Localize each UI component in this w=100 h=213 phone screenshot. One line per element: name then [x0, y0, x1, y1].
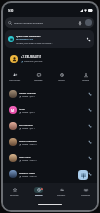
other: Voice search	[78, 21, 82, 25]
staticText: California • Just now	[24, 60, 43, 63]
button[interactable]: Sam Clark	[3, 150, 97, 166]
other: Call Hellen Franklin	[88, 92, 92, 96]
staticText: Add contact	[9, 79, 21, 82]
staticText: Hellen Franklin	[19, 91, 37, 94]
staticText: Mobile • Jun 2	[22, 95, 35, 98]
staticText: San Francisco • 2m	[16, 38, 34, 41]
other: Call Elsa Beckett	[88, 124, 92, 128]
staticText: Mobile • Jun 2	[22, 111, 35, 114]
button[interactable]: Grace Hoffman	[3, 134, 97, 150]
staticText: Favorites	[10, 194, 19, 197]
button[interactable]: Hellen Franklin	[3, 86, 97, 102]
staticText: Quick Ship Deliveries	[16, 34, 41, 37]
staticText: Voicemail	[81, 194, 90, 197]
button[interactable]: History	[50, 69, 73, 85]
staticText: History	[58, 79, 65, 82]
button[interactable]: Elsa Beckett	[3, 118, 97, 134]
staticText: 9:30	[8, 9, 14, 13]
button[interactable]: Favorites	[3, 187, 26, 201]
staticText: Search contacts & places	[14, 21, 77, 24]
button[interactable]: Quick Ship Deliveries	[5, 30, 94, 48]
staticText: Message	[34, 79, 43, 82]
other: Call Grace Hoffman	[88, 140, 92, 144]
staticText: Elsa Beckett	[19, 123, 33, 126]
button[interactable]: Gregory Hicks	[3, 166, 97, 182]
button[interactable]: Voicemail	[74, 187, 97, 201]
other: Call Quick Ship Deliveries	[86, 37, 91, 42]
button[interactable]: Search contacts & places	[5, 17, 94, 28]
other: Call Gregory Hicks	[88, 172, 92, 176]
other: Call Mom	[88, 108, 92, 112]
button[interactable]: +1 310-555-0111	[3, 50, 97, 68]
staticText: Mobile • May 31	[22, 159, 37, 162]
staticText: M	[11, 108, 15, 113]
staticText: Contacts	[57, 194, 66, 197]
button[interactable]: Recents	[27, 187, 50, 201]
staticText: Recents	[35, 194, 43, 197]
staticText: Sam Clark	[19, 155, 31, 158]
button[interactable]: Dialpad	[78, 170, 88, 180]
button[interactable]: M	[3, 102, 97, 118]
staticText: Mobile • May 30	[22, 175, 37, 178]
button[interactable]: Add contact	[3, 69, 26, 85]
staticText: +1 310-555-0111	[21, 55, 42, 59]
staticText: Hi there, your order is ready for pickup…	[16, 42, 53, 45]
staticText: Mobile • May 31	[22, 143, 37, 146]
staticText: Mom	[19, 107, 25, 110]
staticText: Mobile • Jun 1	[22, 127, 35, 130]
staticText: Grace Hoffman	[19, 139, 37, 142]
button[interactable]: Lookup	[74, 69, 97, 85]
button[interactable]: Message	[27, 69, 50, 85]
button[interactable]: Contacts	[50, 187, 73, 201]
staticText: Gregory Hicks	[19, 171, 36, 174]
staticText: Lookup	[82, 79, 90, 82]
other: Call Sam Clark	[88, 156, 92, 160]
